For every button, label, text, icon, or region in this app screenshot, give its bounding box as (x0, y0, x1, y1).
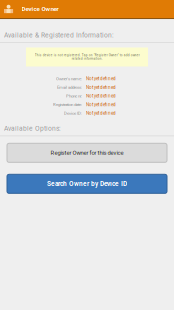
staticText: Registration date: (53, 102, 82, 107)
button[interactable]: Register Owner for this device (7, 143, 167, 162)
staticText: Owner's name: (56, 76, 82, 81)
staticText: Not yet defined (86, 93, 116, 99)
staticText: Available Options: (4, 124, 61, 132)
staticText: Email address: (57, 85, 82, 90)
staticText: Device Owner (21, 5, 58, 13)
staticText: Phone nr: (66, 93, 82, 98)
staticText: Not yet defined (86, 102, 116, 107)
staticText: Register Owner for this device (50, 149, 123, 156)
staticText: Not yet defined (86, 85, 116, 90)
staticText: Not yet defined (86, 76, 116, 81)
staticText: Available & Registered Information: (4, 31, 114, 39)
button[interactable]: Search Owner by Device ID (7, 174, 167, 193)
staticText: Not yet defined (86, 111, 116, 116)
staticText: Device ID: (64, 111, 82, 116)
staticText: Search Owner by Device ID (47, 180, 127, 188)
staticText: This device is not registered. Tap on "R… (34, 53, 139, 61)
